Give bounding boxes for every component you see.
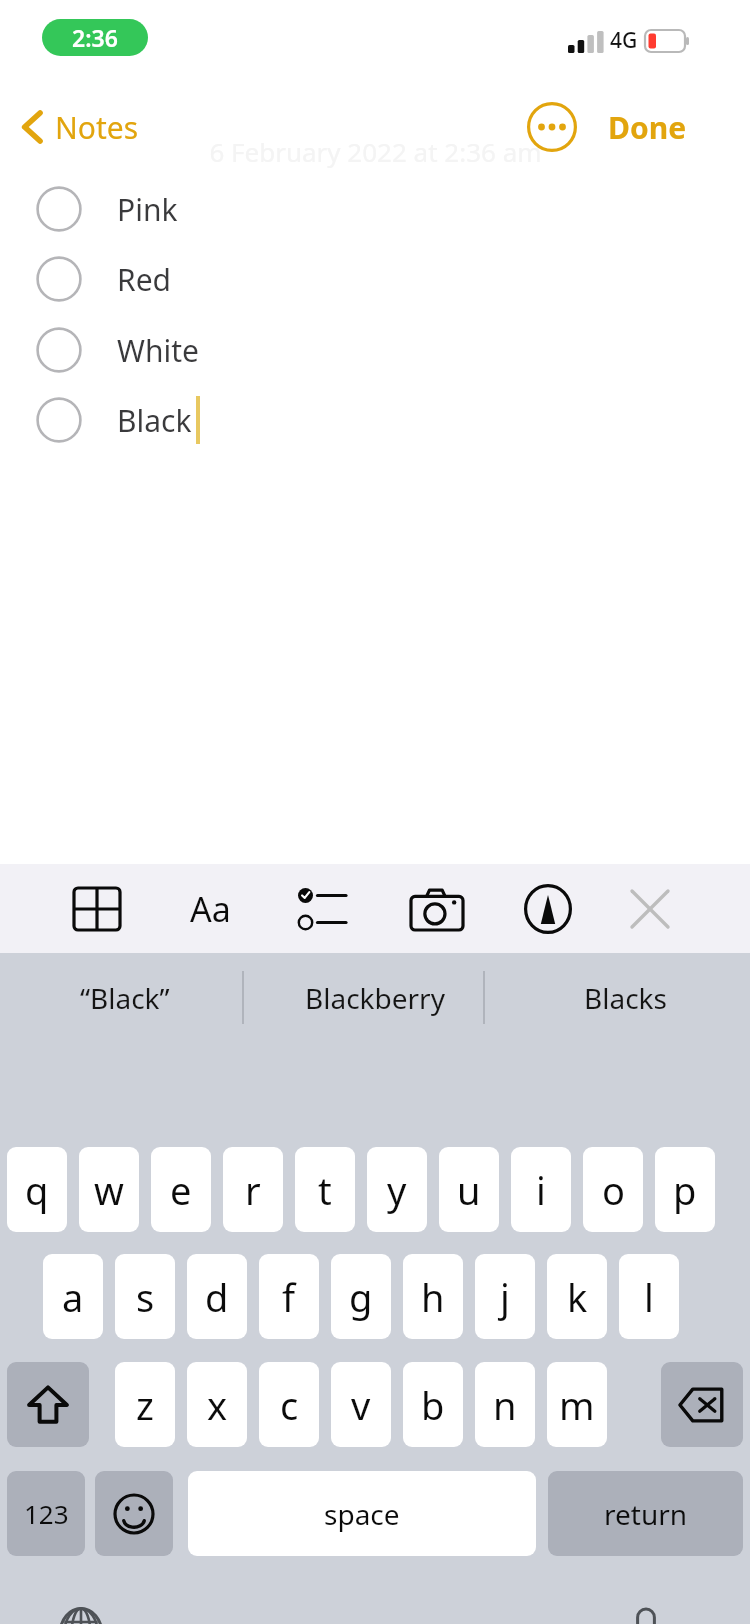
button[interactable]: e [151,1147,211,1232]
button[interactable]: White [36,319,356,381]
staticText: Notes [55,107,139,148]
button[interactable]: i [511,1147,571,1232]
staticText: h [421,1271,445,1323]
button[interactable]: Shift [7,1362,89,1447]
staticText: space [324,1495,400,1533]
button[interactable]: w [79,1147,139,1232]
button[interactable]: Black [36,389,356,451]
button[interactable]: g [331,1254,391,1339]
button[interactable]: Emoji [95,1471,173,1556]
staticText: t [318,1164,332,1216]
button[interactable]: return [548,1471,743,1556]
staticText: i [536,1164,546,1216]
button[interactable]: n [475,1362,535,1447]
staticText: 123 [24,1496,69,1531]
staticText: p [673,1164,697,1216]
button[interactable]: v [331,1362,391,1447]
staticText: k [567,1271,588,1323]
button[interactable]: Backspace [661,1362,743,1447]
button[interactable]: z [115,1362,175,1447]
button[interactable]: r [223,1147,283,1232]
staticText: f [282,1271,296,1323]
button[interactable]: Markup [506,876,590,942]
staticText: n [493,1379,517,1431]
button[interactable]: a [43,1254,103,1339]
button[interactable]: More options [525,100,579,154]
staticText: g [349,1271,373,1323]
staticText: 6 February 2022 at 2:36 am [209,134,542,169]
staticText: j [500,1271,510,1323]
staticText: Red [117,259,172,300]
staticText: e [170,1164,192,1216]
button[interactable]: p [655,1147,715,1232]
button[interactable]: q [7,1147,67,1232]
staticText: m [559,1379,595,1431]
staticText: Aa [190,886,231,932]
button[interactable]: Text format [168,876,252,942]
staticText: s [136,1271,155,1323]
button[interactable]: s [115,1254,175,1339]
staticText: d [205,1271,229,1323]
staticText: “Black” [80,979,170,1017]
staticText: Done [608,107,687,148]
button[interactable]: d [187,1254,247,1339]
button[interactable]: Dictate [617,1604,675,1624]
button[interactable]: m [547,1362,607,1447]
staticText: a [62,1271,84,1323]
staticText: Blacks [584,979,667,1017]
button[interactable]: Table [55,876,139,942]
staticText: Pink [117,189,178,230]
staticText: l [644,1271,654,1323]
staticText: c [280,1379,299,1431]
staticText: 2:36 [72,22,118,53]
button[interactable]: Red [36,248,356,310]
button[interactable]: Close keyboard [608,876,692,942]
button[interactable]: u [439,1147,499,1232]
button[interactable]: “Black” [0,953,250,1042]
staticText: 4G [610,26,638,55]
staticText: b [421,1379,445,1431]
button[interactable]: Pink [36,178,356,240]
staticText: x [207,1379,228,1431]
button[interactable]: x [187,1362,247,1447]
button[interactable]: Switch keyboard [52,1604,110,1624]
button[interactable]: j [475,1254,535,1339]
button[interactable]: Checklist [280,876,364,942]
staticText: v [351,1379,371,1431]
staticText: u [457,1164,481,1216]
button[interactable]: t [295,1147,355,1232]
button[interactable]: Blacks [500,953,750,1042]
button[interactable]: Done [598,101,697,153]
button[interactable]: h [403,1254,463,1339]
button[interactable]: b [403,1362,463,1447]
staticText: q [25,1164,49,1216]
button[interactable]: 123 [7,1471,85,1556]
staticText: return [604,1495,688,1533]
button[interactable]: Notes [14,101,147,153]
button[interactable]: Blackberry [250,953,500,1042]
staticText: Blackberry [305,979,445,1017]
staticText: r [245,1164,261,1216]
button[interactable]: space [188,1471,536,1556]
button[interactable]: Camera [395,876,479,942]
button[interactable]: c [259,1362,319,1447]
button[interactable]: k [547,1254,607,1339]
button[interactable]: o [583,1147,643,1232]
staticText: o [602,1164,625,1216]
staticText: Black [117,400,192,441]
staticText: w [94,1164,124,1216]
staticText: z [136,1379,154,1431]
button[interactable]: f [259,1254,319,1339]
staticText: White [117,330,199,371]
button[interactable]: y [367,1147,427,1232]
staticText: y [387,1164,407,1216]
button[interactable]: l [619,1254,679,1339]
